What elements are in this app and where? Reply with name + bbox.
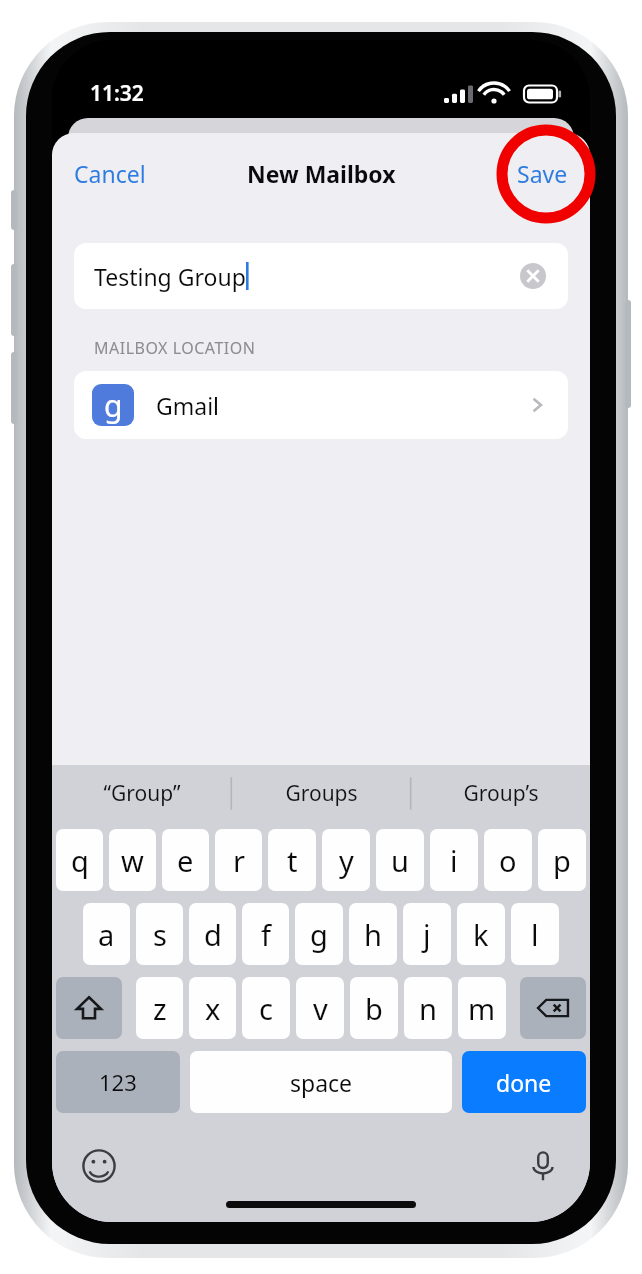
staticText: j [423, 915, 431, 954]
button[interactable]: w [109, 829, 156, 891]
staticText: y [339, 841, 354, 880]
button[interactable]: r [215, 829, 262, 891]
staticText: g [104, 385, 123, 426]
button[interactable]: j [403, 903, 451, 965]
staticText: t [287, 841, 298, 880]
button[interactable]: z [136, 977, 183, 1039]
staticText: r [233, 841, 245, 880]
button[interactable]: h [349, 903, 397, 965]
staticText: m [468, 989, 496, 1028]
button[interactable]: u [376, 829, 424, 891]
staticText: s [153, 915, 167, 954]
button[interactable]: 123 [56, 1051, 180, 1113]
button[interactable]: Clear text [512, 255, 554, 297]
staticText: l [531, 915, 539, 954]
staticText: Testing Group [94, 261, 246, 292]
button[interactable]: Dictation [520, 1143, 566, 1189]
staticText: v [313, 989, 328, 1028]
button[interactable]: o [484, 829, 532, 891]
staticText: o [499, 841, 517, 880]
button[interactable]: l [511, 903, 559, 965]
button[interactable]: space [190, 1051, 452, 1113]
staticText: Groups [285, 779, 358, 808]
button[interactable]: Testing Group [74, 243, 568, 309]
button[interactable]: q [56, 829, 103, 891]
staticText: e [177, 841, 194, 880]
staticText: space [290, 1067, 353, 1098]
button[interactable]: d [189, 903, 236, 965]
button[interactable]: x [189, 977, 236, 1039]
staticText: p [553, 841, 571, 880]
staticText: n [419, 989, 437, 1028]
staticText: Cancel [74, 158, 146, 189]
button[interactable]: y [322, 829, 370, 891]
staticText: Group’s [463, 779, 539, 808]
button[interactable]: e [162, 829, 209, 891]
button[interactable]: a [83, 903, 130, 965]
button[interactable]: done [462, 1051, 586, 1113]
staticText: i [450, 841, 458, 880]
button[interactable]: Shift [56, 977, 122, 1039]
button[interactable]: “Group” [52, 765, 232, 821]
button[interactable]: Cancel [52, 148, 168, 199]
staticText: d [204, 915, 222, 954]
staticText: Gmail [156, 390, 220, 421]
staticText: a [98, 915, 115, 954]
button[interactable]: v [296, 977, 344, 1039]
button[interactable]: Group’s [411, 765, 590, 821]
staticText: w [121, 841, 144, 880]
button[interactable]: n [404, 977, 452, 1039]
button[interactable]: Emoji keyboard [76, 1143, 122, 1189]
staticText: done [496, 1067, 552, 1098]
button[interactable]: g [74, 371, 568, 439]
staticText: q [71, 841, 89, 880]
button[interactable]: t [268, 829, 316, 891]
staticText: h [364, 915, 382, 954]
button[interactable]: g [295, 903, 343, 965]
staticText: “Group” [103, 779, 181, 808]
staticText: 123 [99, 1067, 137, 1097]
button[interactable]: f [242, 903, 289, 965]
staticText: New Mailbox [247, 158, 396, 189]
staticText: x [205, 989, 221, 1028]
button[interactable]: p [538, 829, 586, 891]
button[interactable]: c [242, 977, 290, 1039]
button[interactable]: m [458, 977, 506, 1039]
button[interactable]: Backspace [520, 977, 586, 1039]
staticText: b [365, 989, 383, 1028]
button[interactable]: s [136, 903, 183, 965]
button[interactable]: i [430, 829, 478, 891]
button[interactable]: k [457, 903, 505, 965]
staticText: 11:32 [90, 79, 144, 108]
staticText: u [391, 841, 409, 880]
staticText: f [261, 915, 271, 954]
staticText: c [259, 989, 273, 1028]
staticText: z [153, 989, 167, 1028]
staticText: Save [517, 158, 568, 189]
staticText: g [310, 915, 328, 954]
button[interactable]: Groups [232, 765, 411, 821]
staticText: k [473, 915, 489, 954]
button[interactable]: Save [495, 148, 590, 199]
staticText: MAILBOX LOCATION [94, 337, 256, 359]
button[interactable]: b [350, 977, 398, 1039]
